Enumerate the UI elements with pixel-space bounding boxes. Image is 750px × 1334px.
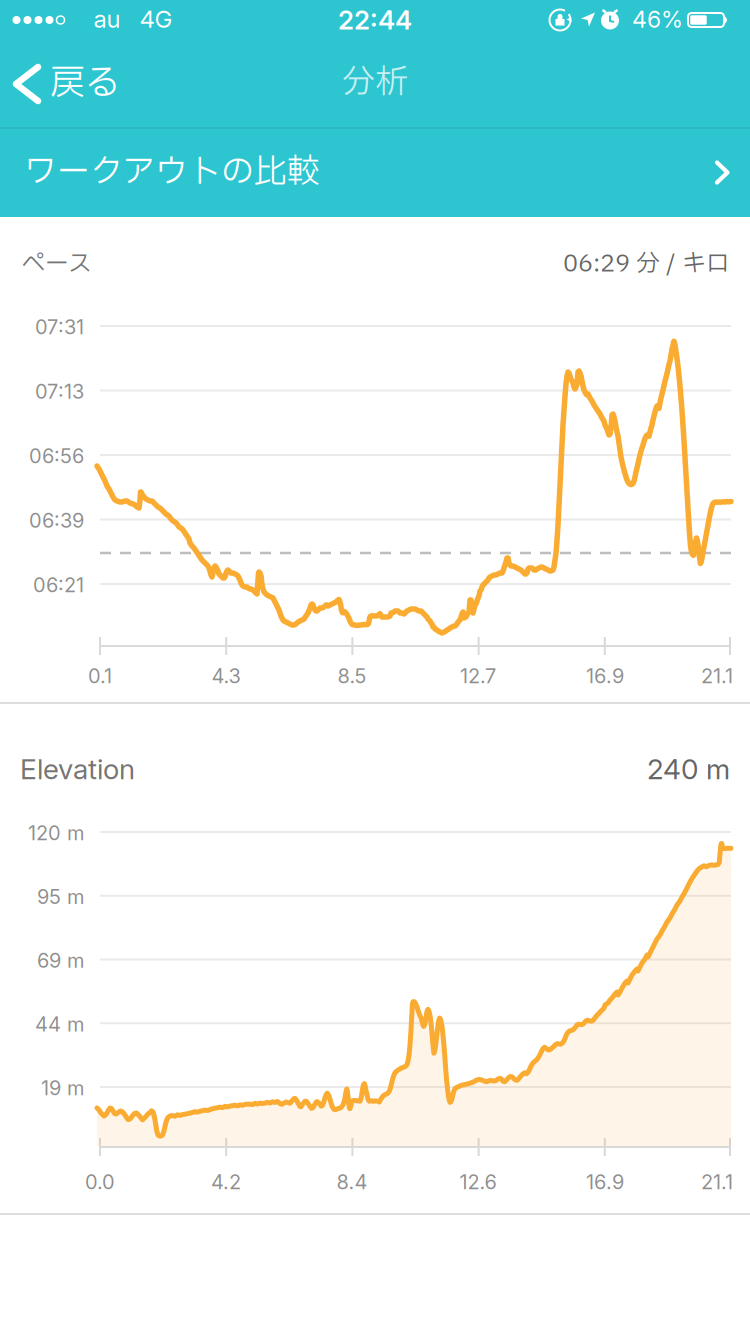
staticText: 0.1: [88, 664, 112, 688]
staticText: 12.7: [460, 664, 496, 688]
staticText: au: [93, 4, 120, 33]
button[interactable]: Back: [10, 58, 120, 110]
staticText: 95 m: [37, 885, 84, 909]
staticText: 16.9: [586, 664, 624, 688]
staticText: 分析: [342, 58, 408, 108]
staticText: 120 m: [28, 821, 84, 845]
staticText: 44 m: [35, 1012, 84, 1036]
staticText: 07:13: [35, 379, 84, 404]
staticText: 46%: [632, 6, 683, 33]
staticText: 69 m: [37, 948, 84, 973]
staticText: 0.0: [85, 1170, 115, 1194]
staticText: 21.1: [701, 664, 733, 688]
staticText: ペース: [21, 246, 92, 282]
staticText: 06:39: [29, 508, 84, 533]
staticText: 4.3: [211, 664, 240, 688]
staticText: 16.9: [586, 1170, 624, 1194]
staticText: 240 m: [647, 752, 730, 786]
staticText: 戻る: [50, 58, 120, 110]
staticText: 22:44: [338, 4, 412, 36]
staticText: Elevation: [20, 752, 135, 786]
staticText: 4.2: [211, 1170, 241, 1194]
staticText: 07:31: [35, 315, 84, 339]
staticText: 8.4: [336, 1170, 367, 1194]
staticText: 06:21: [33, 573, 84, 597]
staticText: 12.6: [459, 1170, 496, 1194]
staticText: 06:29 分 / キロ: [563, 246, 730, 282]
button[interactable]: ワークアウトの比較: [0, 128, 750, 216]
staticText: 19 m: [41, 1076, 84, 1100]
staticText: ワークアウトの比較: [24, 148, 320, 197]
staticText: 21.1: [701, 1170, 733, 1194]
staticText: 06:56: [29, 444, 84, 468]
staticText: 8.5: [337, 664, 366, 688]
staticText: 4G: [139, 4, 172, 33]
